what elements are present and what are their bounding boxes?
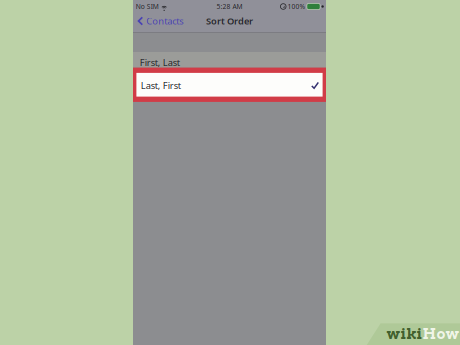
button[interactable]: Contacts — [133, 13, 187, 33]
staticText: wiki — [386, 325, 422, 342]
staticText: 100% — [288, 2, 306, 11]
staticText: Contacts — [146, 15, 183, 27]
staticText: Last, First — [141, 79, 181, 91]
staticText: First, Last — [140, 56, 180, 68]
staticText: How — [422, 325, 459, 342]
staticText: No SIM — [136, 2, 159, 11]
button[interactable]: Last, First — [133, 68, 326, 102]
staticText: Sort Order — [206, 15, 253, 27]
staticText: 5:28 AM — [216, 2, 242, 11]
button[interactable]: First, Last — [133, 52, 326, 68]
